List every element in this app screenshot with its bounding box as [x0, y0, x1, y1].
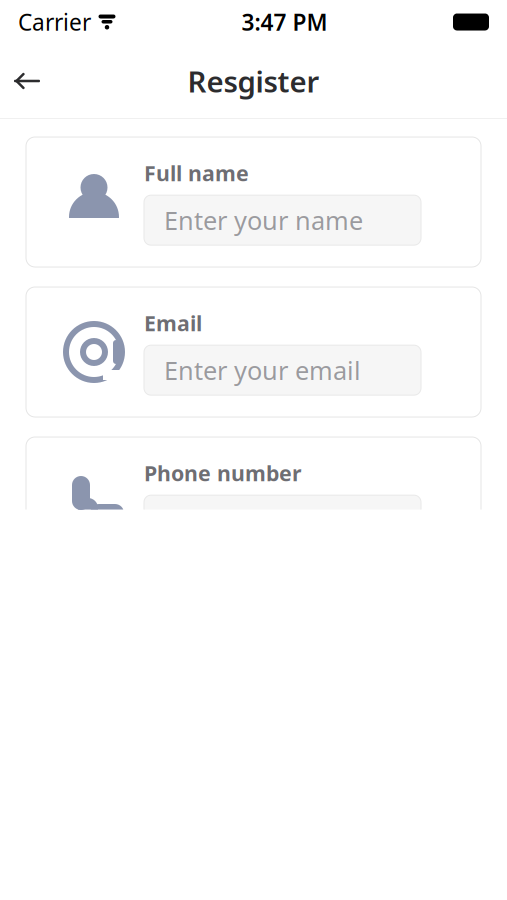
- staticText: Resgister: [187, 61, 319, 100]
- staticText: Enter your name: [164, 203, 363, 237]
- staticText: Carrier: [18, 7, 91, 37]
- staticText: 3:47 PM: [241, 7, 327, 37]
- button[interactable]: Back: [0, 54, 54, 108]
- staticText: Phone number: [144, 459, 302, 487]
- button[interactable]: Enter your name: [144, 195, 421, 245]
- staticText: Enter your number: [164, 503, 391, 537]
- button[interactable]: Enter your email: [144, 345, 421, 395]
- staticText: Enter your email: [164, 353, 361, 387]
- button[interactable]: Enter your number: [144, 495, 421, 545]
- staticText: Email: [144, 309, 202, 337]
- staticText: Full name: [144, 159, 249, 187]
